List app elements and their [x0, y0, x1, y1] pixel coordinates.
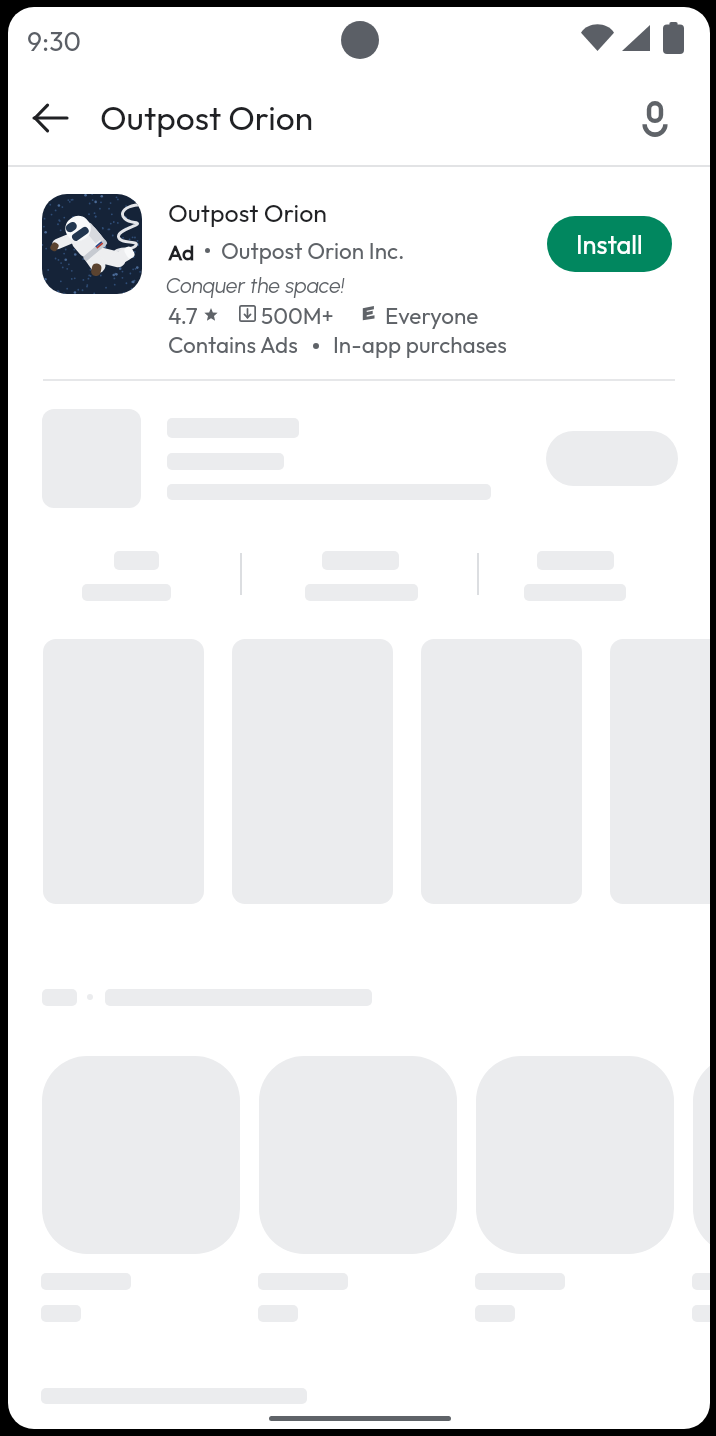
staticText: 4.7: [168, 301, 198, 329]
staticText: In-app purchases: [333, 330, 507, 358]
staticText: Outpost Orion: [100, 96, 314, 138]
staticText: Ad: [168, 239, 195, 265]
staticText: Conquer the space!: [166, 273, 345, 298]
staticText: 500M+: [261, 301, 334, 329]
staticText: Install: [576, 228, 643, 260]
staticText: Outpost Orion Inc.: [221, 236, 405, 264]
staticText: 9:30: [27, 24, 81, 58]
button[interactable]: Install: [547, 216, 672, 272]
staticText: Outpost Orion: [168, 197, 328, 229]
button[interactable]: [8, 176, 710, 370]
button[interactable]: Back: [22, 90, 78, 146]
button[interactable]: Voice search: [627, 90, 683, 146]
staticText: Contains Ads: [168, 330, 298, 358]
staticText: Everyone: [385, 301, 479, 329]
